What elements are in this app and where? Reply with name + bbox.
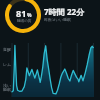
button[interactable]: Sleep score 81 percent	[3, 0, 43, 35]
staticText: 浅い 睡眠	[3, 83, 12, 93]
staticText: 昨夜はいい睡眠	[44, 17, 71, 22]
staticText: 覚醒	[3, 47, 11, 52]
staticText: 7時間	[44, 6, 67, 17]
staticText: %	[27, 12, 32, 19]
staticText: 81	[16, 7, 27, 19]
staticText: 睡眠の質	[17, 19, 32, 24]
staticText: 22分	[67, 6, 85, 17]
staticText: レム	[3, 62, 12, 67]
